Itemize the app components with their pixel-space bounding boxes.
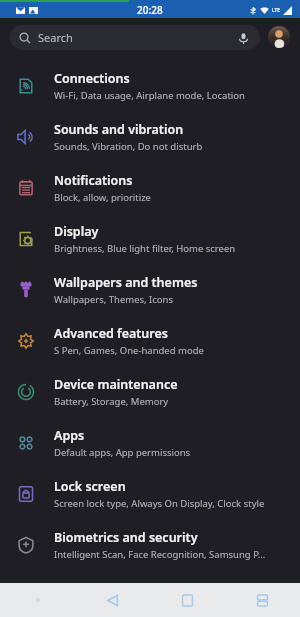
- button[interactable]: Search: [10, 25, 260, 50]
- button[interactable]: Connections: [0, 60, 300, 111]
- staticText: Display: [54, 223, 99, 240]
- button[interactable]: Apps: [0, 417, 300, 468]
- staticText: Wallpapers and themes: [54, 274, 198, 291]
- staticText: Connections: [54, 70, 130, 87]
- staticText: Brightness, Blue light filter, Home scre…: [54, 242, 236, 255]
- staticText: LTE: [272, 7, 281, 14]
- staticText: Advanced features: [54, 325, 168, 342]
- staticText: Block, allow, prioritize: [54, 191, 151, 204]
- staticText: 20:28: [137, 3, 163, 17]
- staticText: Intelligent Scan, Face Recognition, Sams…: [54, 548, 266, 561]
- staticText: Apps: [54, 427, 85, 444]
- button[interactable]: Wallpapers and themes: [0, 264, 300, 315]
- staticText: Screen lock type, Always On Display, Clo…: [54, 497, 265, 510]
- button[interactable]: Advanced features: [0, 315, 300, 366]
- staticText: Wi-Fi, Data usage, Airplane mode, Locati…: [54, 89, 245, 102]
- staticText: Device maintenance: [54, 376, 178, 393]
- staticText: Default apps, App permissions: [54, 446, 191, 459]
- button[interactable]: Biometrics and security: [0, 519, 300, 570]
- staticText: Biometrics and security: [54, 529, 198, 546]
- button[interactable]: Back: [75, 583, 150, 617]
- button[interactable]: Account: [268, 26, 290, 48]
- staticText: S Pen, Games, One-handed mode: [54, 344, 204, 357]
- staticText: Lock screen: [54, 478, 126, 495]
- button[interactable]: Device maintenance: [0, 366, 300, 417]
- staticText: Search: [38, 30, 73, 45]
- staticText: Sounds and vibration: [54, 121, 184, 138]
- staticText: Wallpapers, Themes, Icons: [54, 293, 174, 306]
- button[interactable]: Voice search: [235, 30, 251, 46]
- button[interactable]: Lock screen: [0, 468, 300, 519]
- button[interactable]: Recent apps: [225, 583, 300, 617]
- button[interactable]: Display: [0, 213, 300, 264]
- button[interactable]: Sounds and vibration: [0, 111, 300, 162]
- staticText: Sounds, Vibration, Do not disturb: [54, 140, 203, 153]
- button[interactable]: Notifications: [0, 162, 300, 213]
- staticText: Battery, Storage, Memory: [54, 395, 169, 408]
- button[interactable]: Home: [150, 583, 225, 617]
- staticText: Notifications: [54, 172, 133, 189]
